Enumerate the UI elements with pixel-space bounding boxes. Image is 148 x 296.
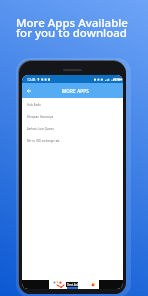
staticText: Ethiopian Horoscope (27, 115, 54, 119)
button[interactable]: Advertisement (49, 280, 99, 289)
staticText: 12:45 (27, 77, 36, 81)
button[interactable]: Hulu Radio (22, 99, 123, 111)
staticText: Amharic Love Quotes (27, 127, 54, 131)
button[interactable]: Back (22, 84, 36, 98)
button[interactable]: Amharic Love Quotes (22, 123, 123, 135)
button[interactable]: Birr to USD exchange rate (22, 135, 123, 147)
staticText: Birr to USD exchange rate (27, 139, 60, 143)
staticText: Hulu Radio (27, 103, 41, 107)
staticText: Test Ad (67, 283, 78, 287)
button[interactable]: Ethiopian Horoscope (22, 111, 123, 123)
staticText: 78% (113, 77, 120, 82)
staticText: for you to download (16, 25, 127, 41)
staticText: More Apps Available (16, 15, 128, 31)
staticText: MORE APPS (62, 88, 89, 94)
